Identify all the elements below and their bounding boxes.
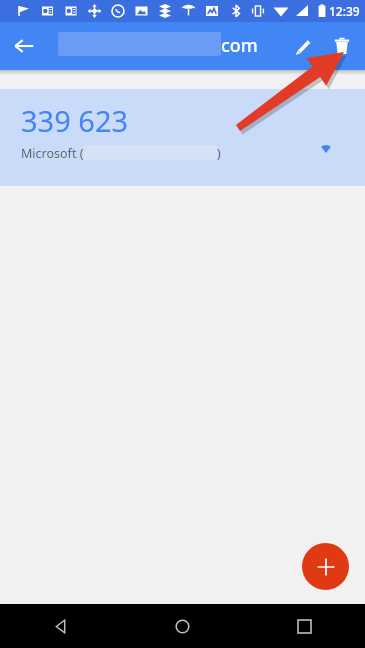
button[interactable]: 339 623 bbox=[0, 89, 365, 186]
button[interactable]: Back bbox=[0, 604, 121, 648]
staticText: Microsoft ( bbox=[21, 145, 84, 162]
staticText: 339 623 bbox=[21, 101, 129, 140]
button[interactable]: Recent apps bbox=[243, 604, 365, 648]
button[interactable]: Back bbox=[3, 25, 45, 67]
button[interactable]: Home bbox=[121, 604, 243, 648]
button[interactable]: Delete bbox=[321, 25, 363, 67]
button[interactable]: Edit bbox=[280, 25, 322, 67]
staticText: ) bbox=[217, 145, 221, 162]
staticText: com bbox=[221, 33, 258, 58]
staticText: 12:39 bbox=[329, 3, 360, 19]
button[interactable]: Add account bbox=[302, 543, 349, 590]
